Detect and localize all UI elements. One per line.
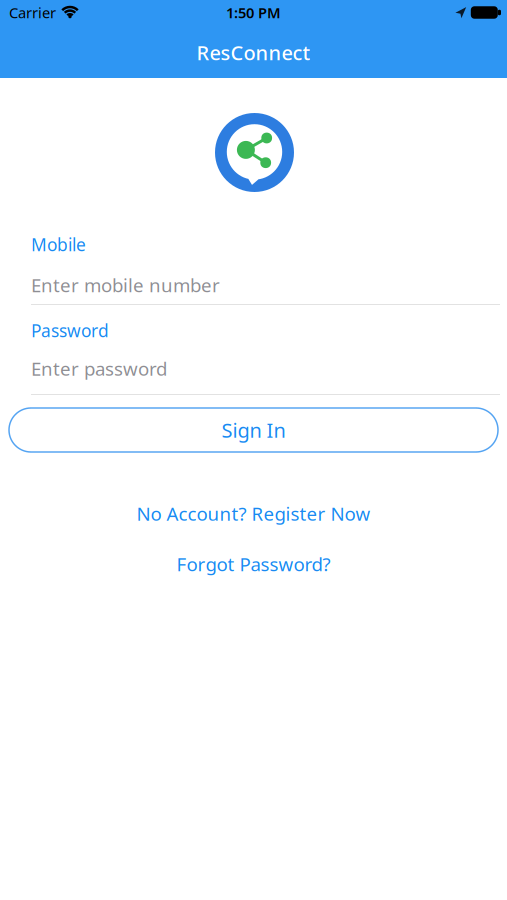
- staticText: 1:50 PM: [226, 3, 281, 22]
- button[interactable]: Enter password: [0, 356, 507, 381]
- staticText: Forgot Password?: [176, 552, 330, 576]
- staticText: No Account? Register Now: [136, 501, 370, 526]
- staticText: Sign In: [221, 417, 285, 443]
- staticText: Enter password: [31, 356, 167, 381]
- staticText: Password: [31, 319, 109, 342]
- staticText: Carrier: [9, 3, 56, 22]
- button[interactable]: No Account? Register Now: [136, 502, 370, 525]
- button[interactable]: Forgot Password?: [176, 552, 330, 575]
- staticText: ResConnect: [196, 39, 310, 66]
- staticText: Enter mobile number: [31, 273, 220, 297]
- staticText: Mobile: [31, 233, 86, 256]
- button[interactable]: Sign In: [9, 408, 498, 452]
- button[interactable]: Enter mobile number: [0, 272, 507, 297]
